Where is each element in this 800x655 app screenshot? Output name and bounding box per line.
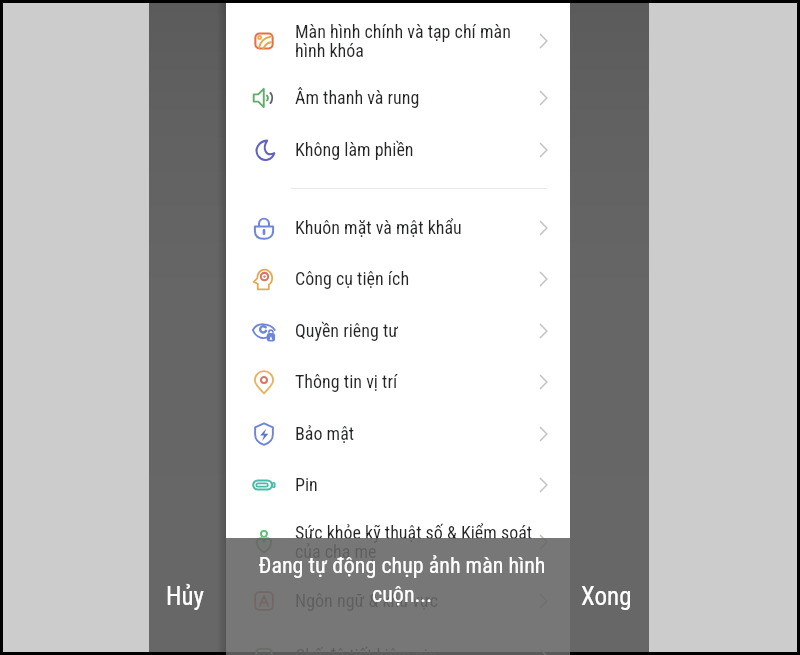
button[interactable]: Màn hình chính và tạp chí màn hình khóa	[226, 15, 570, 66]
button[interactable]: Xong	[568, 577, 644, 615]
button[interactable]: Công cụ tiện ích	[226, 253, 570, 304]
button[interactable]: Ngôn ngữ & khu vực	[226, 575, 570, 626]
staticText: Sức khỏe kỹ thuật số & Kiểm soát của cha…	[295, 522, 533, 562]
button[interactable]: Bảo mật	[226, 408, 570, 459]
staticText: Pin	[295, 474, 318, 495]
staticText: Bảo mật	[295, 423, 355, 444]
button[interactable]: Quyền riêng tư	[226, 305, 570, 356]
staticText: Ngôn ngữ & khu vực	[295, 590, 439, 611]
staticText: Đang tự động chụp ảnh màn hình cuộn...	[242, 553, 562, 607]
button[interactable]: Khuôn mặt và mật khẩu	[226, 202, 570, 253]
staticText: Khuôn mặt và mật khẩu	[295, 217, 462, 238]
button[interactable]: Pin	[226, 459, 570, 510]
button[interactable]: Âm thanh và rung	[226, 72, 570, 123]
button[interactable]: Hủy	[149, 577, 221, 615]
staticText: Không làm phiền	[295, 139, 414, 160]
staticText: Công cụ tiện ích	[295, 268, 410, 289]
button[interactable]: Không làm phiền	[226, 124, 570, 175]
staticText: Chế độ tiết kiệm pin	[295, 645, 437, 655]
staticText: Xong	[581, 582, 632, 611]
staticText: Màn hình chính và tạp chí màn hình khóa	[295, 21, 511, 61]
button[interactable]: Chế độ tiết kiệm pin	[226, 630, 570, 655]
staticText: Âm thanh và rung	[295, 87, 420, 108]
staticText: Quyền riêng tư	[295, 320, 399, 341]
staticText: Thông tin vị trí	[295, 371, 398, 392]
staticText: Hủy	[166, 582, 205, 611]
button[interactable]: Thông tin vị trí	[226, 356, 570, 407]
button[interactable]: Sức khỏe kỹ thuật số & Kiểm soát của cha…	[226, 516, 570, 567]
